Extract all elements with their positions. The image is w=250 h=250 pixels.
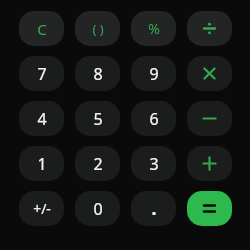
staticText: 0 xyxy=(93,198,103,220)
staticText: 7 xyxy=(37,63,47,85)
staticText: C xyxy=(37,19,47,39)
staticText: 2 xyxy=(93,153,103,175)
button[interactable]: 3 xyxy=(131,146,176,181)
staticText: 6 xyxy=(149,108,159,130)
staticText: . xyxy=(151,196,157,221)
button[interactable]: 6 xyxy=(131,101,176,136)
staticText: ( ) xyxy=(92,20,104,38)
button[interactable]: Decimal point xyxy=(131,191,176,226)
button[interactable]: 5 xyxy=(75,101,120,136)
staticText: 8 xyxy=(93,63,103,85)
staticText: % xyxy=(148,19,160,38)
staticText: +/- xyxy=(33,199,51,218)
button[interactable]: Add xyxy=(187,146,232,181)
button[interactable]: 9 xyxy=(131,56,176,91)
staticText: 9 xyxy=(149,63,159,85)
button[interactable]: Parentheses xyxy=(75,11,120,46)
button[interactable]: 1 xyxy=(19,146,64,181)
button[interactable]: Plus minus xyxy=(19,191,64,226)
staticText: 3 xyxy=(149,153,159,175)
button[interactable]: Clear xyxy=(19,11,64,46)
button[interactable]: Percent xyxy=(131,11,176,46)
button[interactable]: Subtract xyxy=(187,101,232,136)
button[interactable]: 2 xyxy=(75,146,120,181)
button[interactable]: 0 xyxy=(75,191,120,226)
button[interactable]: 4 xyxy=(19,101,64,136)
staticText: 4 xyxy=(37,108,47,130)
button[interactable]: Multiply xyxy=(187,56,232,91)
staticText: 1 xyxy=(37,153,47,175)
button[interactable]: Divide xyxy=(187,11,232,46)
button[interactable]: 8 xyxy=(75,56,120,91)
staticText: 5 xyxy=(93,108,103,130)
button[interactable]: Equals xyxy=(187,191,232,226)
button[interactable]: 7 xyxy=(19,56,64,91)
